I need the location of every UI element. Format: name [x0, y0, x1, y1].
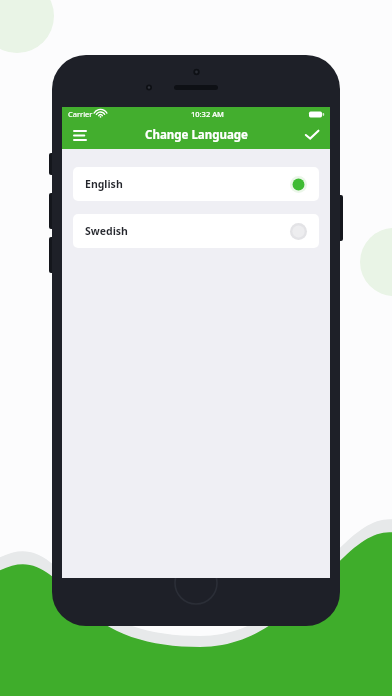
- staticText: English: [85, 177, 123, 191]
- button[interactable]: Menu: [66, 121, 94, 149]
- staticText: 10:32 AM: [191, 109, 224, 119]
- button[interactable]: English: [73, 167, 319, 201]
- staticText: Carrier: [68, 109, 93, 119]
- button[interactable]: Confirm: [298, 121, 326, 149]
- staticText: Change Language: [145, 127, 248, 143]
- button[interactable]: Swedish: [73, 214, 319, 248]
- staticText: Swedish: [85, 224, 128, 238]
